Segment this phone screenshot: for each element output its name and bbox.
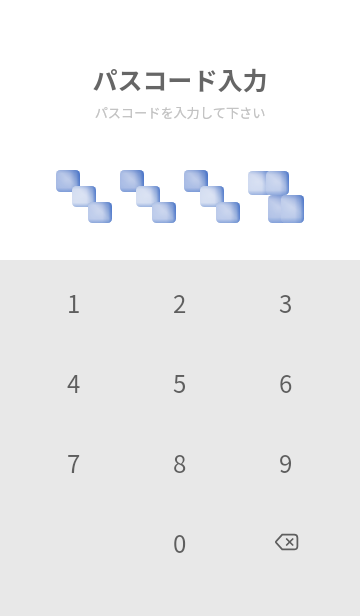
staticText: 3 (279, 285, 293, 320)
button[interactable]: 2 (127, 262, 233, 342)
button[interactable]: 3 (233, 262, 339, 342)
button[interactable]: 1 (21, 262, 127, 342)
button[interactable]: 9 (233, 422, 339, 502)
staticText: 6 (279, 365, 293, 400)
other: Delete (263, 519, 309, 565)
button[interactable]: 6 (233, 342, 339, 422)
staticText: 5 (173, 365, 187, 400)
staticText: 1 (67, 285, 81, 320)
button[interactable]: 5 (127, 342, 233, 422)
button[interactable]: 7 (21, 422, 127, 502)
button[interactable]: 8 (127, 422, 233, 502)
staticText: パスコード入力 (0, 61, 360, 97)
button[interactable]: 4 (21, 342, 127, 422)
button[interactable]: 0 (127, 502, 233, 582)
staticText: 7 (67, 445, 81, 480)
staticText: 0 (173, 525, 187, 560)
staticText: パスコードを入力して下さい (0, 103, 360, 122)
staticText: 9 (279, 445, 293, 480)
staticText: 2 (173, 285, 187, 320)
button[interactable]: Delete (233, 502, 339, 582)
staticText: 4 (67, 365, 81, 400)
staticText: 8 (173, 445, 187, 480)
